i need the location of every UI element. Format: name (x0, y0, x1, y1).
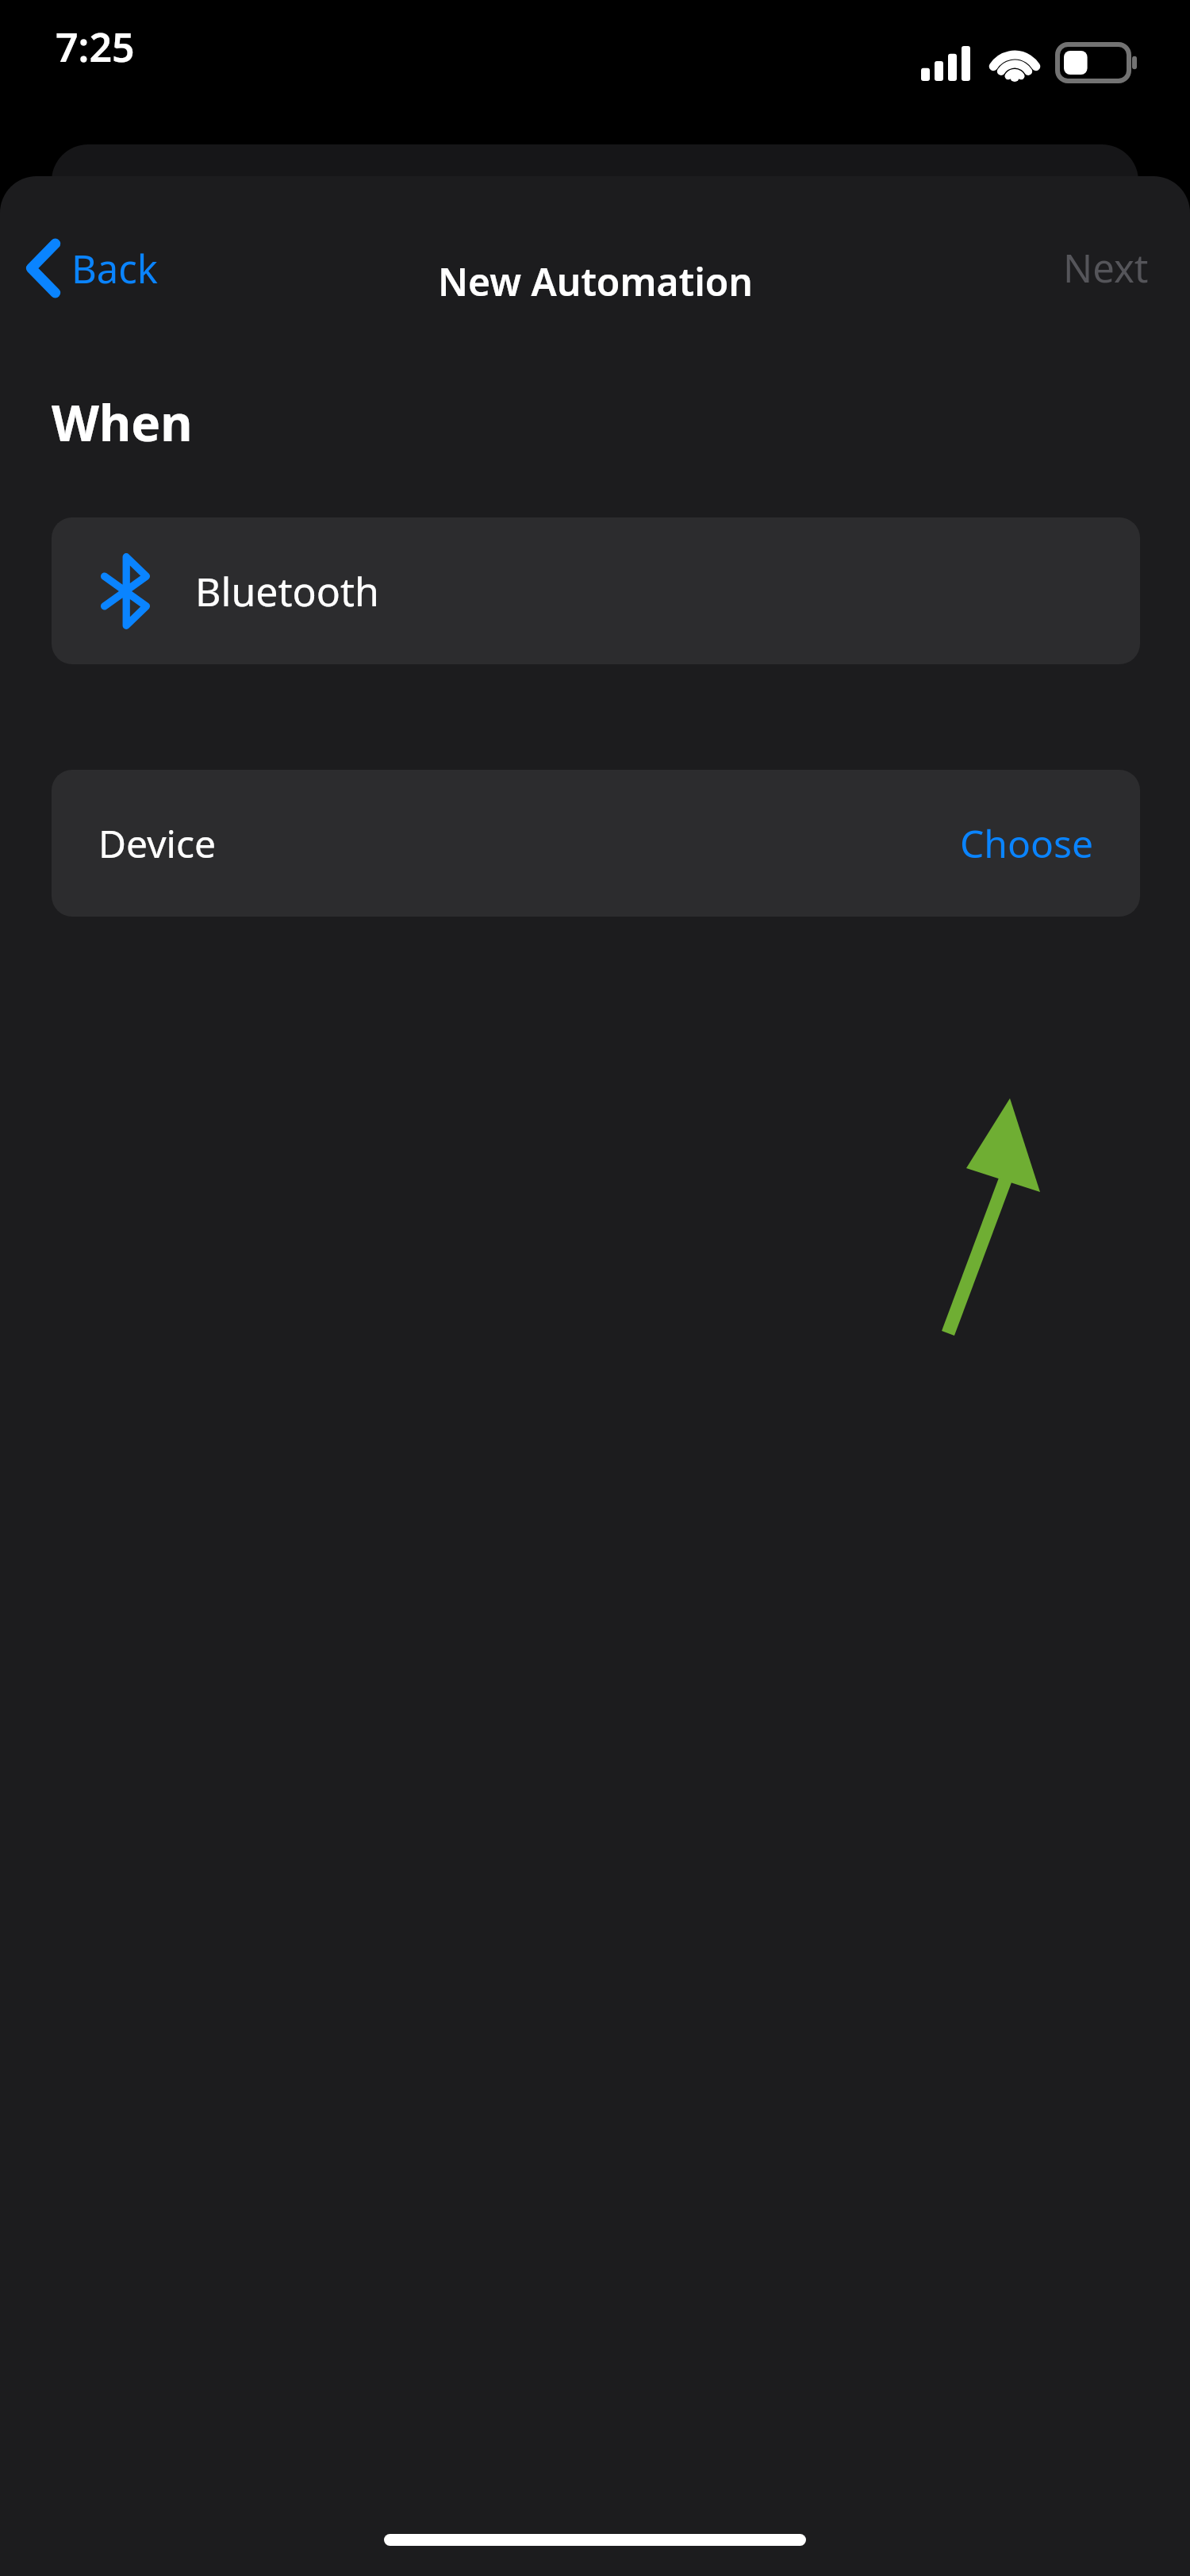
button[interactable]: Next (1054, 233, 1158, 302)
staticText: New Automation (438, 256, 753, 307)
other: Bluetooth (102, 555, 149, 628)
staticText: Back (71, 242, 159, 295)
staticText: When (52, 389, 193, 456)
staticText: 7:25 (56, 20, 135, 74)
button[interactable]: Back (17, 233, 167, 303)
staticText: Bluetooth (195, 564, 379, 618)
staticText: Device (98, 817, 217, 869)
staticText: Next (1063, 241, 1149, 294)
staticText: Choose (960, 817, 1094, 869)
button[interactable]: Device (52, 770, 1140, 917)
button[interactable]: Bluetooth (52, 517, 1140, 664)
